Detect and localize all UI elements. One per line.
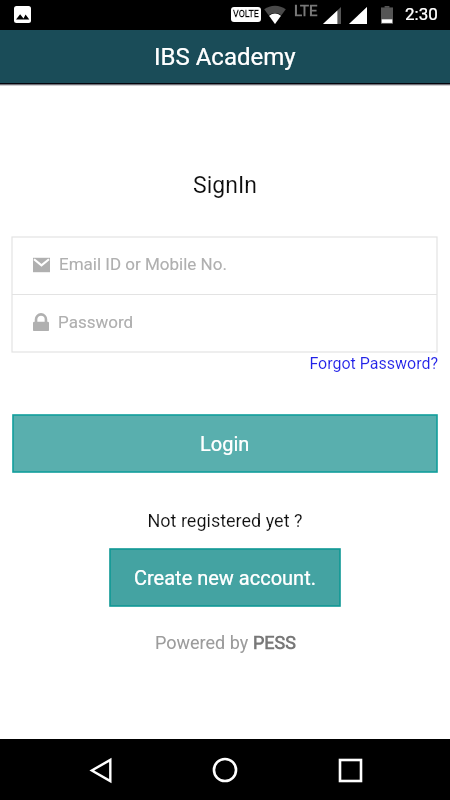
- staticText: 2:30: [405, 4, 438, 24]
- staticText: PESS: [253, 632, 296, 653]
- staticText: IBS Academy: [154, 43, 296, 71]
- staticText: LTE: [294, 2, 318, 20]
- button[interactable]: Back: [78, 747, 124, 793]
- staticText: Create new account.: [134, 566, 316, 589]
- button[interactable]: Home: [202, 747, 248, 793]
- staticText: Password: [58, 312, 134, 332]
- staticText: SignIn: [0, 172, 450, 199]
- staticText: Login: [200, 432, 250, 455]
- button[interactable]: Password: [33, 295, 437, 352]
- staticText: Not registered yet ?: [0, 510, 450, 531]
- staticText: VOLTE: [233, 9, 259, 20]
- button[interactable]: Forgot Password?: [0, 354, 450, 373]
- staticText: Powered by: [155, 632, 253, 653]
- button[interactable]: Create new account.: [110, 549, 340, 606]
- staticText: Email ID or Mobile No.: [59, 254, 227, 274]
- button[interactable]: Recent apps: [327, 747, 373, 793]
- button[interactable]: Email ID or Mobile No.: [33, 237, 437, 294]
- button[interactable]: Login: [13, 415, 437, 472]
